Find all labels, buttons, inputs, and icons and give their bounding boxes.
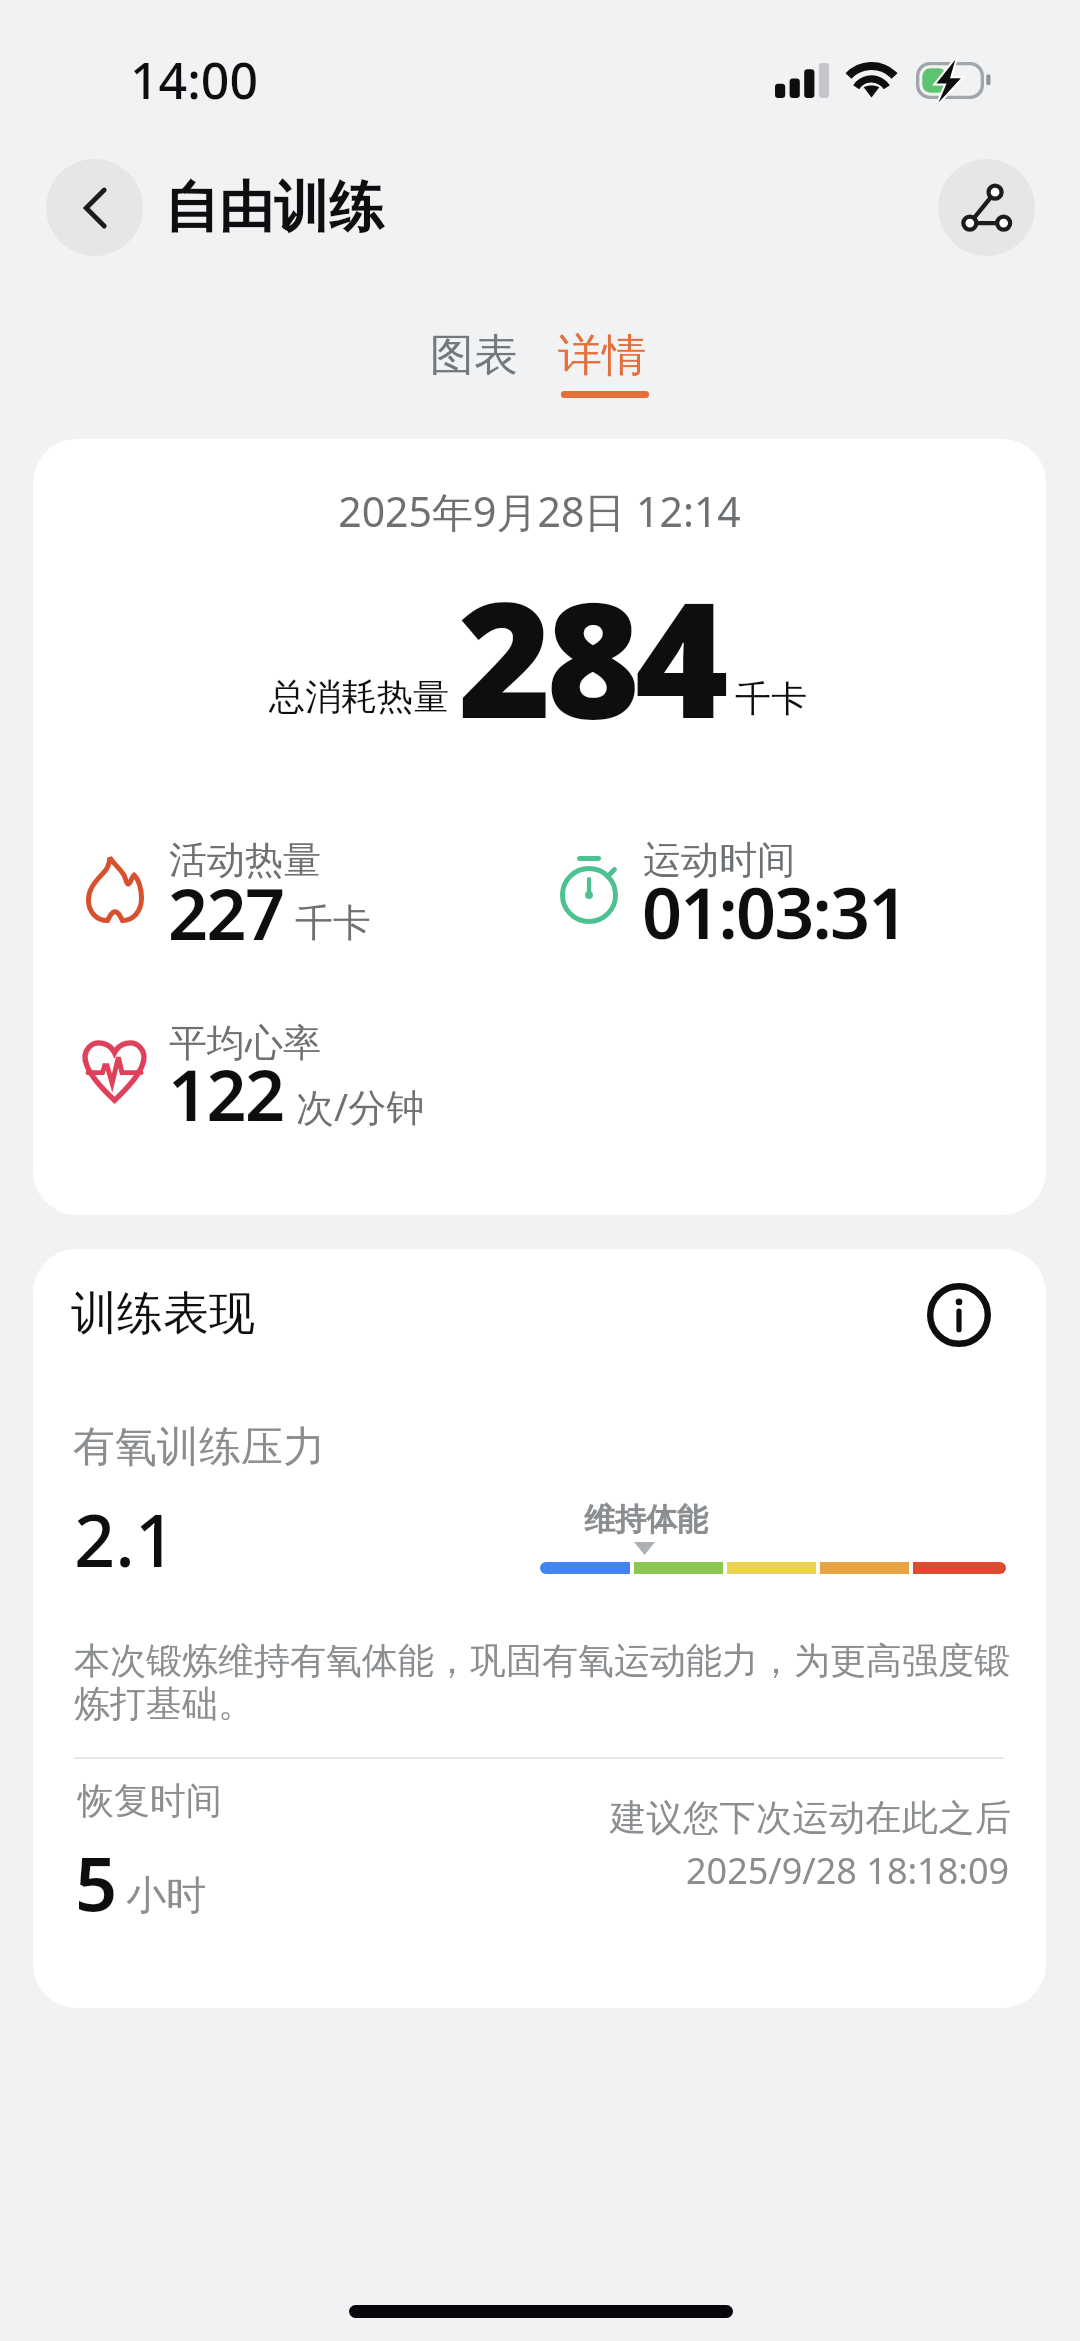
staticText: 小时: [126, 1870, 206, 1920]
staticText: 284: [458, 547, 724, 765]
button[interactable]: 运动时间: [545, 827, 1015, 947]
staticText: 运动时间: [643, 836, 795, 884]
staticText: 2025/9/28 18:18:09: [686, 1846, 1010, 1895]
staticText: 恢复时间: [78, 1778, 222, 1823]
staticText: 5: [75, 1832, 118, 1933]
staticText: 图表: [430, 328, 518, 383]
staticText: 14:00: [130, 46, 258, 114]
button[interactable]: Share: [938, 159, 1035, 256]
button[interactable]: 活动热量: [71, 827, 541, 947]
staticText: 122: [168, 1046, 284, 1141]
staticText: 千卡: [295, 899, 371, 947]
staticText: 维持体能: [584, 1500, 708, 1539]
button[interactable]: Info: [921, 1277, 996, 1352]
staticText: 千卡: [735, 676, 807, 721]
staticText: 总消耗热量: [269, 674, 449, 719]
staticText: 次/分钟: [296, 1080, 425, 1132]
staticText: 227: [168, 865, 284, 960]
staticText: 训练表现: [71, 1285, 255, 1343]
staticText: 建议您下次运动在此之后: [610, 1795, 1012, 1840]
button[interactable]: 平均心率: [71, 1010, 541, 1130]
button[interactable]: 详情: [530, 298, 680, 406]
button[interactable]: 图表: [400, 298, 556, 406]
staticText: 活动热量: [169, 836, 321, 884]
staticText: 有氧训练压力: [73, 1421, 325, 1474]
staticText: 详情: [558, 328, 646, 383]
staticText: 本次锻炼维持有氧体能，巩固有氧运动能力，为更高强度锻炼打基础。: [74, 1638, 1019, 1727]
staticText: 自由训练: [164, 173, 384, 242]
button[interactable]: Back: [46, 159, 143, 256]
staticText: 2025年9月28日 12:14: [33, 483, 1046, 539]
staticText: 2.1: [74, 1490, 176, 1588]
staticText: 01:03:31: [642, 864, 907, 959]
staticText: 平均心率: [169, 1019, 321, 1067]
